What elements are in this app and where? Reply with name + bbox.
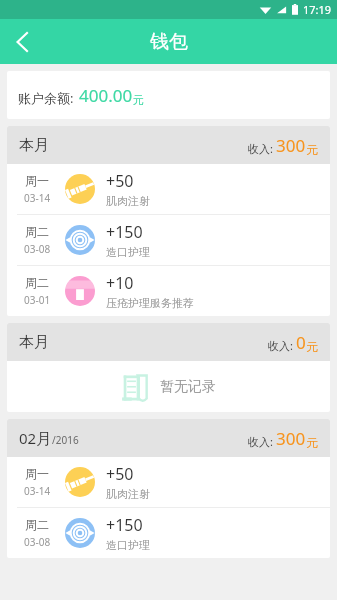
- staticText: 03-08: [24, 535, 51, 549]
- button[interactable]: 暂无记录: [7, 361, 330, 412]
- staticText: 17:19: [303, 2, 332, 17]
- staticText: 300: [276, 134, 306, 157]
- staticText: 元: [306, 142, 318, 157]
- staticText: 压疮护理服务推荐: [106, 296, 194, 310]
- button[interactable]: 02月: [7, 419, 330, 457]
- staticText: 造口护理: [106, 538, 150, 552]
- staticText: 元: [306, 339, 318, 354]
- staticText: 400.00: [79, 84, 133, 107]
- staticText: +50: [106, 170, 134, 192]
- staticText: 暂无记录: [160, 378, 216, 396]
- staticText: 03-01: [24, 293, 51, 307]
- staticText: 账户余额:: [18, 89, 74, 107]
- staticText: +50: [106, 463, 134, 485]
- staticText: 肌肉注射: [106, 487, 150, 501]
- staticText: 03-14: [24, 191, 51, 205]
- button[interactable]: Back: [0, 19, 45, 64]
- button[interactable]: 周二: [7, 508, 330, 558]
- staticText: 收入:: [248, 141, 273, 156]
- staticText: 02月: [19, 428, 52, 448]
- staticText: 元: [133, 93, 144, 107]
- staticText: 03-08: [24, 242, 51, 256]
- staticText: /2016: [52, 433, 79, 447]
- button[interactable]: 账户余额:: [7, 71, 330, 119]
- staticText: +150: [106, 221, 143, 243]
- staticText: 0: [296, 331, 306, 354]
- button[interactable]: 周一: [7, 164, 330, 214]
- staticText: 周二: [25, 275, 49, 290]
- staticText: 本月: [19, 333, 49, 352]
- staticText: 周一: [25, 173, 49, 188]
- button[interactable]: 本月: [7, 126, 330, 164]
- staticText: 元: [306, 435, 318, 450]
- staticText: 周二: [25, 517, 49, 532]
- button[interactable]: 周一: [7, 457, 330, 507]
- staticText: 造口护理: [106, 245, 150, 259]
- staticText: +150: [106, 514, 143, 536]
- staticText: 03-14: [24, 484, 51, 498]
- staticText: 周一: [25, 466, 49, 481]
- button[interactable]: 周二: [7, 215, 330, 265]
- button[interactable]: 周二: [7, 266, 330, 316]
- staticText: 收入:: [248, 434, 273, 449]
- staticText: 收入:: [268, 338, 293, 353]
- staticText: 周二: [25, 224, 49, 239]
- staticText: 300: [276, 427, 306, 450]
- staticText: 钱包: [150, 30, 188, 54]
- button[interactable]: 本月: [7, 323, 330, 361]
- staticText: 本月: [19, 136, 49, 155]
- staticText: +10: [106, 272, 134, 294]
- staticText: 肌肉注射: [106, 194, 150, 208]
